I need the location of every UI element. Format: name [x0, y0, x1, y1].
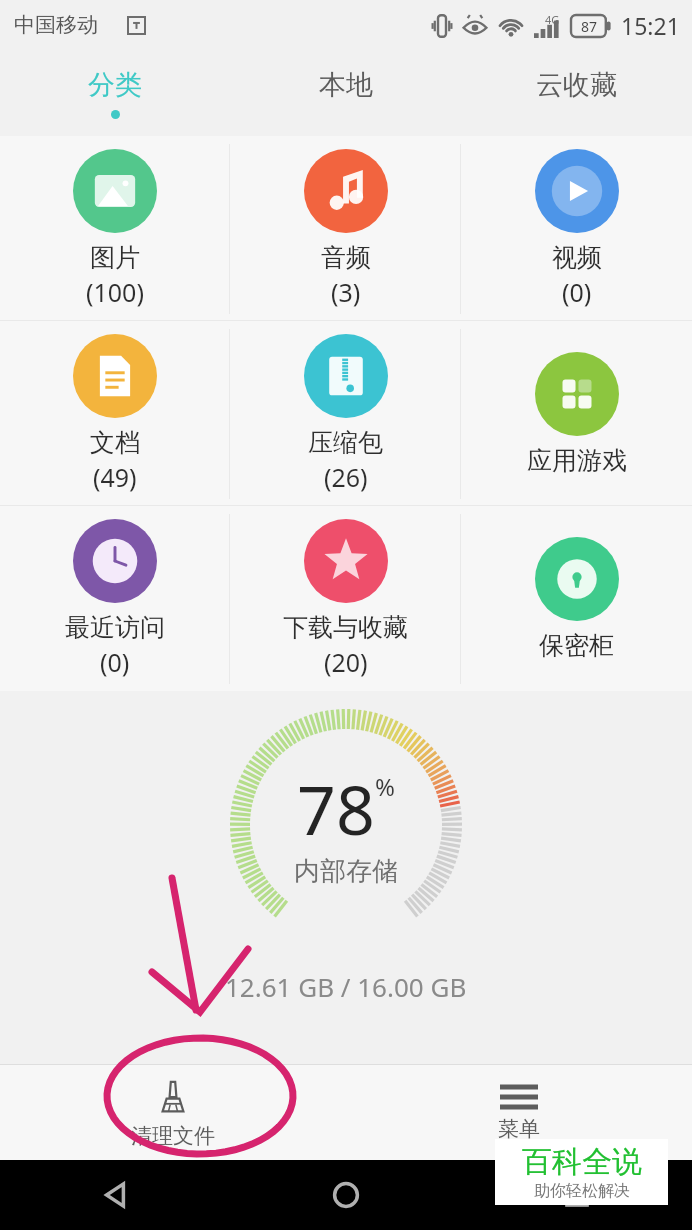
- staticText: 保密柜: [539, 630, 614, 661]
- button[interactable]: 云收藏: [461, 50, 692, 136]
- staticText: 下载与收藏: [283, 612, 408, 643]
- button[interactable]: Home: [331, 1180, 361, 1210]
- staticText: 12.61 GB / 16.00 GB: [225, 969, 467, 1004]
- button[interactable]: 视频: [461, 136, 692, 321]
- button[interactable]: 本地: [230, 50, 461, 136]
- button[interactable]: 压缩包: [230, 321, 461, 506]
- staticText: %: [375, 770, 395, 803]
- button[interactable]: 分类: [0, 50, 230, 136]
- staticText: 压缩包: [308, 427, 383, 458]
- staticText: (26): [324, 460, 368, 494]
- staticText: 清理文件: [131, 1123, 215, 1149]
- staticText: 音频: [321, 242, 371, 273]
- staticText: 应用游戏: [527, 445, 627, 476]
- button[interactable]: 图片: [0, 136, 230, 321]
- staticText: 图片: [90, 242, 140, 273]
- button[interactable]: 下载与收藏: [230, 506, 461, 691]
- staticText: 4G: [545, 12, 560, 27]
- staticText: 本地: [319, 68, 373, 102]
- staticText: 87: [581, 17, 598, 36]
- staticText: 视频: [552, 242, 602, 273]
- staticText: (3): [331, 275, 361, 309]
- staticText: 助你轻松解决: [534, 1181, 630, 1201]
- staticText: (20): [324, 645, 368, 679]
- staticText: (49): [93, 460, 137, 494]
- button[interactable]: 音频: [230, 136, 461, 321]
- button[interactable]: Back: [100, 1180, 130, 1210]
- staticText: 中国移动: [14, 12, 98, 38]
- button[interactable]: 保密柜: [461, 506, 692, 691]
- staticText: (0): [562, 275, 592, 309]
- staticText: 百科全说: [522, 1143, 642, 1181]
- staticText: 最近访问: [65, 612, 165, 643]
- staticText: 菜单: [498, 1116, 540, 1142]
- staticText: 内部存储: [294, 855, 398, 888]
- button[interactable]: 菜单: [346, 1065, 692, 1160]
- staticText: (100): [86, 275, 144, 309]
- button[interactable]: 清理文件: [0, 1065, 346, 1160]
- staticText: 云收藏: [536, 68, 617, 102]
- staticText: 文档: [90, 427, 140, 458]
- staticText: 78: [297, 762, 375, 855]
- button[interactable]: Recents: [563, 1181, 591, 1209]
- button[interactable]: 文档: [0, 321, 230, 506]
- staticText: 分类: [88, 68, 142, 102]
- button[interactable]: 最近访问: [0, 506, 230, 691]
- button[interactable]: 应用游戏: [461, 321, 692, 506]
- staticText: 15:21: [621, 10, 680, 41]
- staticText: (0): [100, 645, 130, 679]
